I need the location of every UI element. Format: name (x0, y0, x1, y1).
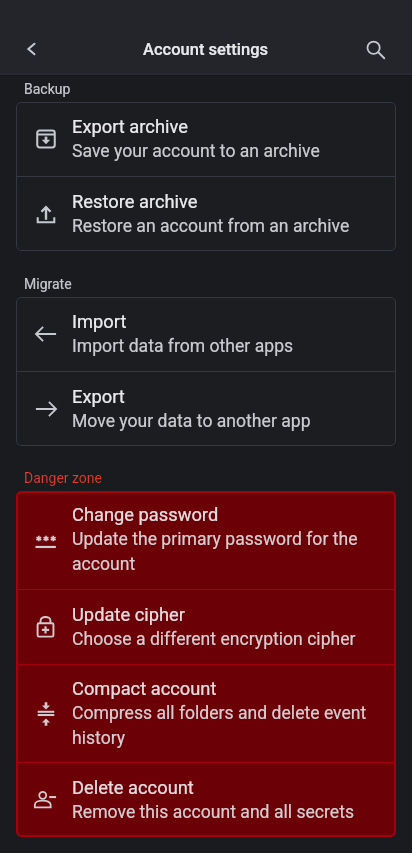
staticText: Compress all folders and delete event hi… (72, 699, 376, 749)
staticText: Import (72, 312, 127, 332)
staticText: Import data from other apps (72, 332, 294, 357)
button[interactable]: Back (7, 25, 55, 73)
button[interactable]: Export archive (16, 102, 396, 176)
staticText: Migrate (24, 276, 72, 292)
staticText: Compact account (72, 679, 217, 699)
staticText: Remove this account and all secrets (72, 798, 354, 823)
staticText: Restore an account from an archive (72, 212, 350, 237)
staticText: Choose a different encryption cipher (72, 625, 356, 650)
button[interactable]: Import (16, 297, 396, 371)
staticText: Update the primary password for the acco… (72, 525, 376, 575)
staticText: Move your data to another app (72, 407, 311, 432)
button[interactable]: Export (16, 372, 396, 446)
button[interactable]: Delete account (16, 763, 396, 837)
staticText: Update cipher (72, 605, 185, 625)
staticText: Restore archive (72, 192, 198, 212)
staticText: Account settings (143, 40, 269, 59)
button[interactable]: Search (352, 25, 400, 73)
staticText: Export archive (72, 117, 188, 137)
staticText: Danger zone (24, 470, 103, 486)
staticText: Backup (24, 81, 71, 97)
button[interactable]: Compact account (16, 665, 396, 762)
button[interactable]: Change password (16, 491, 396, 589)
button[interactable]: Restore archive (16, 177, 396, 251)
button[interactable]: Update cipher (16, 590, 396, 664)
staticText: Delete account (72, 778, 194, 798)
staticText: Export (72, 387, 125, 407)
staticText: Save your account to an archive (72, 137, 320, 162)
staticText: Change password (72, 505, 219, 525)
